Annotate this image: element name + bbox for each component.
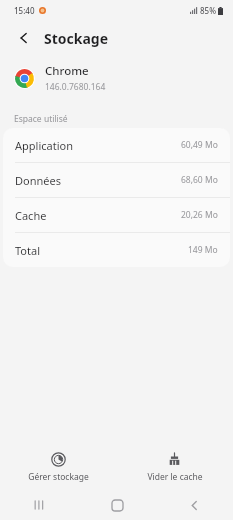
staticText: Espace utilisé [14, 113, 68, 125]
staticText: 149 Mo [188, 244, 218, 256]
staticText: Données [15, 173, 61, 188]
staticText: 15:40 [14, 5, 35, 16]
button[interactable]: Home [99, 490, 135, 520]
button[interactable]: Back [12, 26, 36, 50]
staticText: 60,49 Mo [181, 139, 218, 151]
staticText: 20,26 Mo [181, 209, 218, 221]
button[interactable]: Gérer stockage [0, 448, 116, 487]
button[interactable]: Back [176, 490, 212, 520]
button[interactable]: Application [3, 128, 230, 162]
button[interactable]: Cache [3, 198, 230, 232]
staticText: 146.0.7680.164 [45, 81, 106, 93]
button[interactable]: Données [3, 163, 230, 197]
button[interactable]: Chrome [0, 56, 233, 100]
staticText: Cache [15, 208, 47, 223]
staticText: 85% [200, 5, 216, 16]
staticText: Chrome [45, 63, 89, 79]
staticText: Stockage [44, 29, 109, 48]
button[interactable]: Recent apps [21, 490, 57, 520]
staticText: 68,60 Mo [181, 174, 218, 186]
button[interactable]: Total [3, 233, 230, 267]
staticText: Application [15, 138, 73, 153]
button[interactable]: Vider le cache [116, 448, 233, 487]
staticText: Gérer stockage [28, 471, 89, 483]
staticText: Vider le cache [147, 471, 203, 483]
staticText: Total [15, 243, 40, 258]
